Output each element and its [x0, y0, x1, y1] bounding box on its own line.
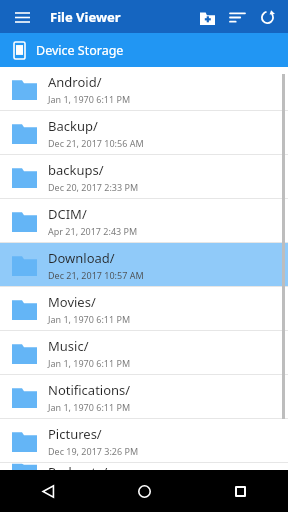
staticText: backups/ — [48, 161, 104, 179]
button[interactable]: Open navigation drawer — [8, 3, 36, 31]
button[interactable]: Music/ — [0, 331, 288, 374]
button[interactable]: Back — [27, 470, 69, 512]
button[interactable]: backups/ — [0, 155, 288, 198]
staticText: Apr 21, 2017 2:43 PM — [48, 225, 138, 237]
button[interactable]: Backup/ — [0, 111, 288, 154]
button[interactable]: Recent apps — [219, 470, 261, 512]
staticText: Jan 1, 1970 6:11 PM — [48, 357, 131, 369]
staticText: DCIM/ — [48, 205, 87, 223]
staticText: Dec 21, 2017 10:56 AM — [48, 137, 144, 149]
button[interactable]: Movies/ — [0, 287, 288, 330]
staticText: Pictures/ — [48, 425, 102, 443]
staticText: Notifications/ — [48, 381, 131, 399]
button[interactable]: Pictures/ — [0, 419, 288, 462]
staticText: Music/ — [48, 337, 89, 355]
button[interactable]: Android/ — [0, 67, 288, 110]
staticText: Dec 19, 2017 3:26 PM — [48, 445, 139, 457]
staticText: Jan 1, 1970 6:11 PM — [48, 93, 131, 105]
staticText: Movies/ — [48, 293, 96, 311]
staticText: Android/ — [48, 73, 102, 91]
button[interactable]: Notifications/ — [0, 375, 288, 418]
button[interactable]: Download/ — [0, 243, 288, 286]
button[interactable]: Sort — [222, 2, 252, 32]
staticText: Podcasts/ — [48, 463, 108, 470]
staticText: Download/ — [48, 249, 115, 267]
staticText: Jan 1, 1970 6:11 PM — [48, 313, 131, 325]
staticText: Device Storage — [36, 42, 124, 59]
button[interactable]: Podcasts/ — [0, 463, 288, 470]
staticText: Dec 21, 2017 10:57 AM — [48, 269, 144, 281]
button[interactable]: Device Storage — [0, 33, 288, 67]
staticText: Dec 20, 2017 2:33 PM — [48, 181, 139, 193]
staticText: File Viewer — [50, 8, 121, 26]
button[interactable]: New folder — [192, 2, 222, 32]
staticText: Jan 1, 1970 6:11 PM — [48, 401, 131, 413]
staticText: Backup/ — [48, 117, 98, 135]
button[interactable]: DCIM/ — [0, 199, 288, 242]
button[interactable]: Home — [123, 470, 165, 512]
button[interactable]: Refresh — [252, 2, 282, 32]
